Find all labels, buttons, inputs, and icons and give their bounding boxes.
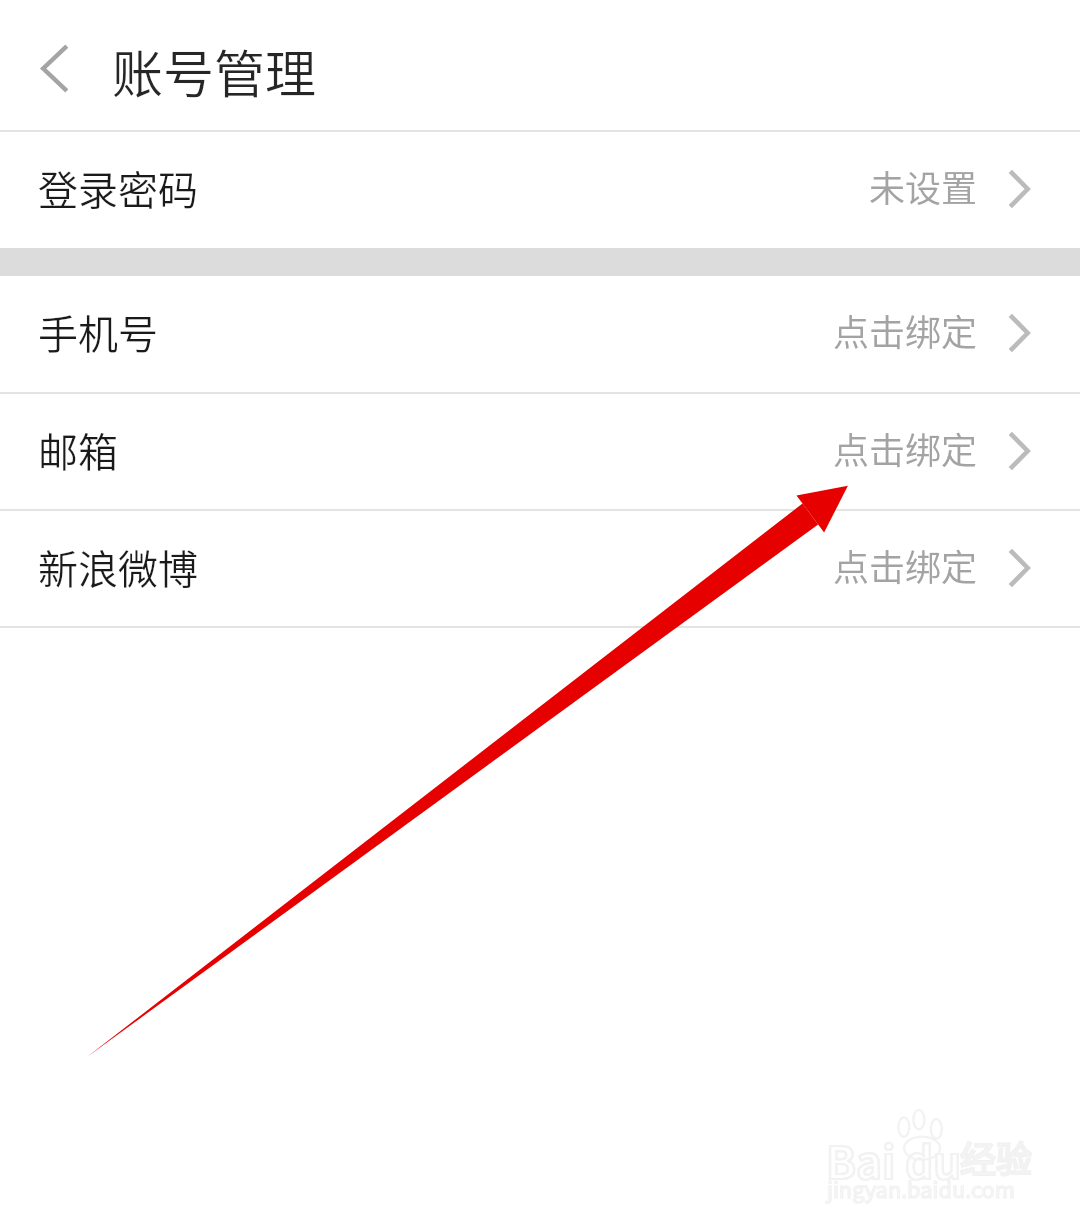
staticText: Bai xyxy=(826,1128,896,1192)
staticText: 经验 xyxy=(960,1131,1033,1183)
staticText: 未设置 xyxy=(869,160,978,212)
button[interactable]: 新浪微博 xyxy=(0,511,1080,626)
staticText: 手机号 xyxy=(38,303,158,361)
staticText: du xyxy=(905,1128,962,1192)
staticText: 新浪微博 xyxy=(38,538,198,596)
button[interactable]: 登录密码 xyxy=(0,132,1080,248)
staticText: 点击绑定 xyxy=(833,422,978,474)
staticText: 点击绑定 xyxy=(833,539,978,591)
staticText: 账号管理 xyxy=(112,34,317,108)
button[interactable]: 手机号 xyxy=(0,276,1080,392)
staticText: jingyan.baidu.com xyxy=(827,1172,1015,1204)
staticText: 点击绑定 xyxy=(833,304,978,356)
button[interactable]: 邮箱 xyxy=(0,394,1080,509)
staticText: 登录密码 xyxy=(38,159,198,217)
button[interactable]: Back xyxy=(14,28,96,108)
staticText: 邮箱 xyxy=(38,421,118,479)
